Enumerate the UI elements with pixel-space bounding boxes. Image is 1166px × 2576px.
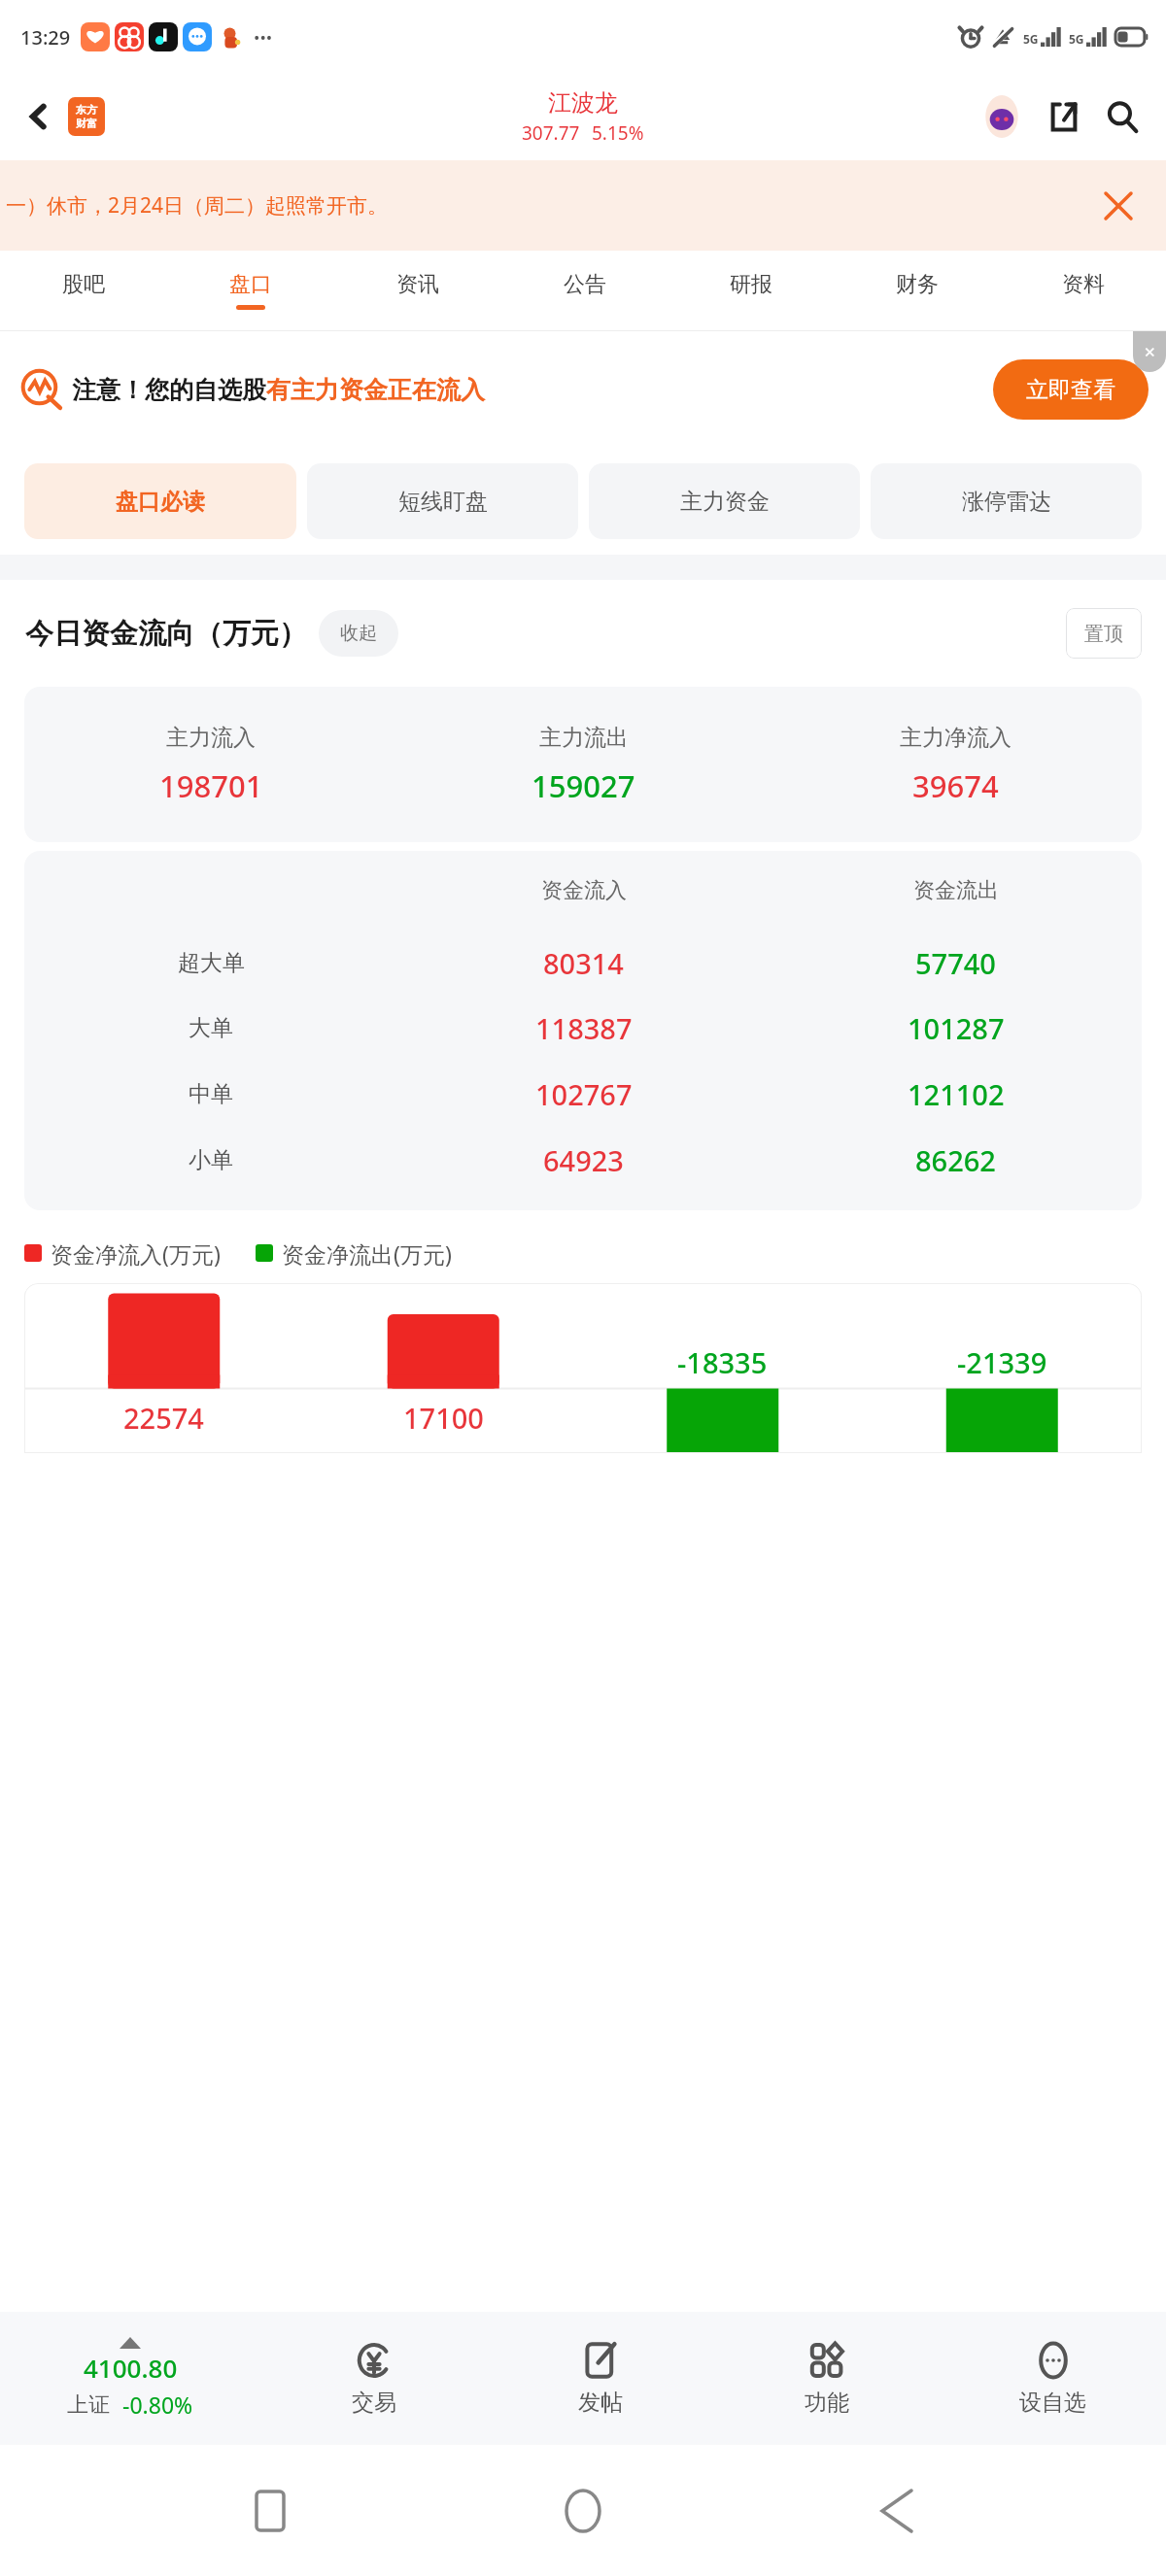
staticText: 资金流出 bbox=[913, 877, 999, 904]
staticText: 资料 bbox=[1062, 271, 1105, 298]
staticText: 198701 bbox=[159, 765, 263, 806]
button[interactable]: 收起 bbox=[319, 610, 398, 657]
staticText: 公告 bbox=[564, 271, 606, 298]
staticText: 置顶 bbox=[1084, 622, 1123, 646]
staticText: 中单 bbox=[189, 1080, 233, 1108]
button[interactable]: Back bbox=[853, 2467, 941, 2555]
staticText: -0.80% bbox=[122, 2390, 193, 2420]
button[interactable]: 盘口必读 bbox=[24, 463, 296, 539]
button[interactable]: 4100.80 bbox=[0, 2312, 260, 2445]
button[interactable]: 财务 bbox=[834, 251, 1000, 330]
staticText: 5G bbox=[1069, 31, 1084, 47]
staticText: 小单 bbox=[189, 1146, 233, 1174]
staticText: 您的自选股 bbox=[145, 375, 266, 405]
button[interactable]: 公告 bbox=[501, 251, 668, 330]
button[interactable]: 发帖 bbox=[487, 2312, 713, 2445]
button[interactable]: Close ad bbox=[1133, 331, 1166, 372]
button[interactable]: 大单 bbox=[24, 996, 1142, 1061]
staticText: 118387 bbox=[535, 1009, 633, 1047]
button[interactable]: 置顶 bbox=[1066, 608, 1142, 659]
staticText: 102767 bbox=[535, 1075, 633, 1113]
staticText: 主力净流入 bbox=[900, 724, 1012, 752]
button[interactable]: 涨停雷达 bbox=[871, 463, 1142, 539]
staticText: 主力资金 bbox=[680, 488, 770, 516]
staticText: 80314 bbox=[543, 944, 624, 982]
button[interactable]: 研报 bbox=[668, 251, 834, 330]
button[interactable]: 主力资金 bbox=[589, 463, 860, 539]
staticText: 功能 bbox=[805, 2389, 849, 2417]
staticText: 22574 bbox=[123, 1399, 204, 1437]
button[interactable]: 主力净流入 bbox=[770, 687, 1142, 842]
staticText: -18335 bbox=[677, 1343, 768, 1381]
staticText: 资金流入 bbox=[541, 877, 627, 904]
staticText: 159027 bbox=[532, 765, 635, 806]
button[interactable]: 中单 bbox=[24, 1061, 1142, 1127]
staticText: 307.77 bbox=[522, 120, 580, 146]
staticText: 101287 bbox=[908, 1009, 1005, 1047]
button[interactable]: Search bbox=[1096, 90, 1149, 143]
staticText: 主力流入 bbox=[166, 724, 256, 752]
staticText: 资讯 bbox=[396, 271, 439, 298]
staticText: 13:29 bbox=[20, 24, 71, 51]
button[interactable]: Close notice bbox=[1092, 180, 1145, 232]
button[interactable]: 主力流出 bbox=[397, 687, 770, 842]
staticText: 涨停雷达 bbox=[962, 488, 1051, 516]
staticText: 立即查看 bbox=[1026, 376, 1115, 404]
staticText: 大单 bbox=[189, 1014, 233, 1042]
staticText: 64923 bbox=[543, 1141, 624, 1179]
staticText: ••• bbox=[254, 26, 273, 49]
button[interactable]: 交易 bbox=[260, 2312, 487, 2445]
staticText: 研报 bbox=[730, 271, 772, 298]
staticText: 57740 bbox=[915, 944, 996, 982]
staticText: 交易 bbox=[352, 2389, 396, 2417]
staticText: 86262 bbox=[915, 1141, 996, 1179]
button[interactable]: Home bbox=[539, 2467, 627, 2555]
staticText: 盘口 bbox=[229, 271, 272, 298]
staticText: 设自选 bbox=[1019, 2389, 1086, 2417]
staticText: 4100.80 bbox=[84, 2351, 178, 2385]
button[interactable]: 盘口 bbox=[167, 251, 334, 330]
button[interactable]: Share bbox=[1038, 90, 1090, 143]
staticText: 财务 bbox=[896, 271, 939, 298]
button[interactable]: 资料 bbox=[1000, 251, 1166, 330]
staticText: 上证 bbox=[67, 2391, 110, 2419]
button[interactable]: Back bbox=[16, 93, 62, 140]
staticText: 有主力资金正在流入 bbox=[266, 375, 485, 405]
button[interactable]: Recents bbox=[226, 2467, 314, 2555]
staticText: 39674 bbox=[912, 765, 999, 806]
button[interactable]: 资讯 bbox=[334, 251, 501, 330]
staticText: 主力流出 bbox=[539, 724, 629, 752]
button[interactable]: 功能 bbox=[713, 2312, 940, 2445]
button[interactable]: 设自选 bbox=[940, 2312, 1166, 2445]
staticText: -21339 bbox=[957, 1343, 1047, 1381]
staticText: 股吧 bbox=[62, 271, 105, 298]
button[interactable]: East Money bbox=[68, 97, 105, 136]
staticText: 资金净流入(万元) bbox=[51, 1238, 221, 1269]
staticText: 一）休市，2月24日（周二）起照常开市。 bbox=[6, 191, 389, 220]
staticText: 5.15% bbox=[592, 120, 644, 146]
staticText: 收起 bbox=[340, 622, 377, 645]
staticText: 盘口必读 bbox=[116, 488, 205, 516]
staticText: 注意！ bbox=[72, 375, 145, 405]
button[interactable]: 立即查看 bbox=[993, 359, 1149, 420]
button[interactable]: 超大单 bbox=[24, 931, 1142, 996]
staticText: ✕ bbox=[1144, 344, 1156, 360]
staticText: 东方 bbox=[76, 103, 97, 117]
staticText: 今日资金流向（万元） bbox=[25, 616, 307, 652]
staticText: 5G bbox=[1023, 31, 1039, 47]
staticText: 资金净流出(万元) bbox=[282, 1238, 452, 1269]
staticText: 121102 bbox=[908, 1075, 1005, 1113]
button[interactable]: Assistant bbox=[976, 90, 1028, 143]
button[interactable]: 股吧 bbox=[0, 251, 167, 330]
button[interactable]: 主力流入 bbox=[24, 687, 397, 842]
button[interactable]: 短线盯盘 bbox=[307, 463, 578, 539]
staticText: 发帖 bbox=[578, 2389, 623, 2417]
staticText: 17100 bbox=[403, 1399, 484, 1437]
staticText: 江波龙 bbox=[548, 88, 618, 118]
staticText: 短线盯盘 bbox=[398, 488, 488, 516]
staticText: 财富 bbox=[76, 117, 97, 130]
staticText: 超大单 bbox=[178, 949, 245, 977]
button[interactable]: 小单 bbox=[24, 1127, 1142, 1193]
